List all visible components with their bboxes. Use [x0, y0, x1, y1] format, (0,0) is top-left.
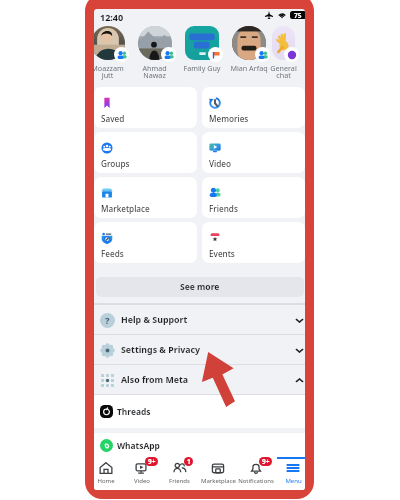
- staticText: 9+: [262, 457, 270, 466]
- staticText: Feeds: [101, 248, 124, 259]
- staticText: WhatsApp: [117, 440, 160, 451]
- staticText: Threads: [117, 406, 151, 417]
- staticText: Settings & Privacy: [121, 344, 201, 356]
- button[interactable]: Moazzam Jutt: [94, 26, 131, 88]
- button[interactable]: Home: [94, 457, 124, 490]
- other: Marketplace: [211, 461, 225, 475]
- staticText: Menu: [285, 477, 302, 485]
- other: Friends: [172, 461, 186, 475]
- staticText: See more: [180, 281, 220, 293]
- other: Notifications: [249, 461, 263, 475]
- button[interactable]: Family Guy: [178, 26, 225, 88]
- button[interactable]: Friends: [202, 177, 305, 218]
- button[interactable]: Video: [202, 132, 305, 173]
- button[interactable]: ?: [94, 305, 305, 335]
- button[interactable]: WhatsApp: [94, 433, 305, 457]
- staticText: Memories: [209, 113, 249, 124]
- button[interactable]: Mian Arfaq: [225, 26, 272, 88]
- staticText: Groups: [101, 158, 130, 169]
- staticText: Home: [97, 477, 115, 485]
- staticText: Video: [134, 477, 150, 485]
- staticText: Family Guy: [183, 63, 221, 73]
- other: Menu: [286, 461, 300, 475]
- button[interactable]: Memories: [202, 87, 305, 128]
- staticText: Help & Support: [121, 314, 188, 326]
- button[interactable]: Marketplace: [200, 457, 236, 490]
- staticText: Saved: [101, 113, 125, 124]
- staticText: Marketplace: [201, 477, 236, 485]
- button[interactable]: Groups: [94, 132, 197, 173]
- button[interactable]: See more: [96, 277, 304, 297]
- staticText: Mian Arfaq: [230, 63, 268, 73]
- staticText: 12:40: [100, 11, 124, 23]
- staticText: Moazzam Jutt: [94, 63, 124, 80]
- button[interactable]: Threads: [94, 395, 305, 428]
- staticText: Notifications: [238, 477, 274, 485]
- button[interactable]: Settings & Privacy: [94, 335, 305, 365]
- button[interactable]: Menu: [275, 457, 305, 490]
- staticText: 75: [294, 11, 302, 19]
- button[interactable]: Saved: [94, 87, 197, 128]
- button[interactable]: Ahmad Nawaz: [131, 26, 178, 88]
- staticText: Ahmad Nawaz: [142, 63, 167, 80]
- button[interactable]: Events: [202, 222, 305, 263]
- button[interactable]: Friends: [161, 457, 197, 490]
- other: Home: [99, 461, 113, 475]
- staticText: Also from Meta: [121, 374, 189, 386]
- staticText: General chat: [270, 63, 297, 80]
- staticText: Events: [209, 248, 235, 259]
- button[interactable]: Marketplace: [94, 177, 197, 218]
- staticText: 9+: [148, 457, 156, 466]
- other: Video: [135, 461, 149, 475]
- button[interactable]: Also from Meta: [94, 365, 305, 395]
- button[interactable]: Video: [124, 457, 160, 490]
- staticText: ?: [105, 314, 110, 327]
- staticText: Marketplace: [101, 203, 150, 214]
- button[interactable]: Notifications: [238, 457, 274, 490]
- staticText: Video: [209, 158, 232, 169]
- staticText: Friends: [209, 203, 238, 214]
- staticText: 1: [187, 457, 191, 466]
- button[interactable]: General chat: [272, 26, 295, 88]
- staticText: Friends: [169, 477, 190, 485]
- button[interactable]: Feeds: [94, 222, 197, 263]
